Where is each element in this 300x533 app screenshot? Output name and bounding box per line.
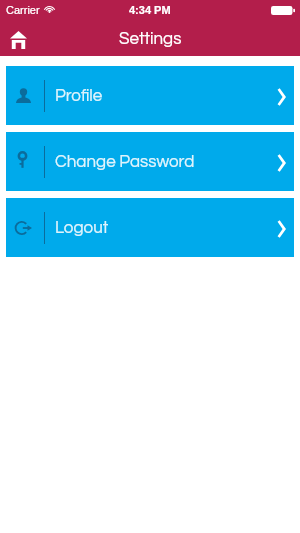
- button[interactable]: Change Password: [6, 132, 294, 191]
- button[interactable]: Home: [10, 31, 27, 49]
- staticText: Profile: [55, 87, 103, 105]
- staticText: Carrier: [6, 4, 40, 16]
- button[interactable]: Logout: [6, 198, 294, 257]
- staticText: Change Password: [55, 153, 195, 171]
- staticText: 4:34 PM: [129, 4, 171, 16]
- button[interactable]: Profile: [6, 66, 294, 125]
- staticText: Settings: [119, 30, 182, 48]
- staticText: Logout: [55, 219, 109, 237]
